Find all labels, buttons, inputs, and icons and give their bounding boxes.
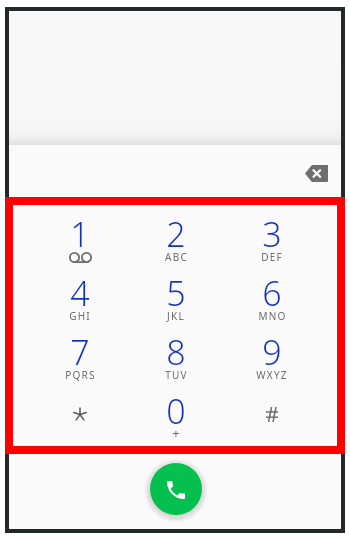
staticText: 6 <box>262 270 282 316</box>
button[interactable]: 0 <box>128 382 224 441</box>
button[interactable]: 6 <box>224 264 320 323</box>
button[interactable]: 3 <box>224 205 320 264</box>
staticText: DEF <box>261 250 283 264</box>
staticText: PQRS <box>65 368 96 382</box>
staticText: 8 <box>166 329 186 375</box>
staticText: 4 <box>70 270 90 316</box>
button[interactable]: 5 <box>128 264 224 323</box>
staticText: WXYZ <box>256 368 288 382</box>
button[interactable]: 4 <box>32 264 128 323</box>
staticText: JKL <box>167 309 185 323</box>
button[interactable]: Star <box>32 382 128 441</box>
staticText: 3 <box>262 211 282 257</box>
button[interactable]: 2 <box>128 205 224 264</box>
staticText: 9 <box>262 329 282 375</box>
button[interactable]: 8 <box>128 323 224 382</box>
button[interactable]: 7 <box>32 323 128 382</box>
staticText: 2 <box>166 211 186 257</box>
button[interactable]: 1 <box>32 205 128 264</box>
staticText: 7 <box>70 329 90 375</box>
staticText: + <box>172 424 180 442</box>
button[interactable]: 9 <box>224 323 320 382</box>
staticText: TUV <box>165 368 188 382</box>
staticText: ABC <box>165 250 188 264</box>
staticText: 5 <box>166 270 186 316</box>
button[interactable]: Backspace <box>294 156 338 190</box>
staticText: 0 <box>166 388 186 434</box>
button[interactable]: Call <box>150 463 202 515</box>
staticText: 1 <box>70 211 90 257</box>
button[interactable]: Pound <box>224 382 320 441</box>
staticText: GHI <box>69 309 91 323</box>
staticText: MNO <box>258 309 287 323</box>
